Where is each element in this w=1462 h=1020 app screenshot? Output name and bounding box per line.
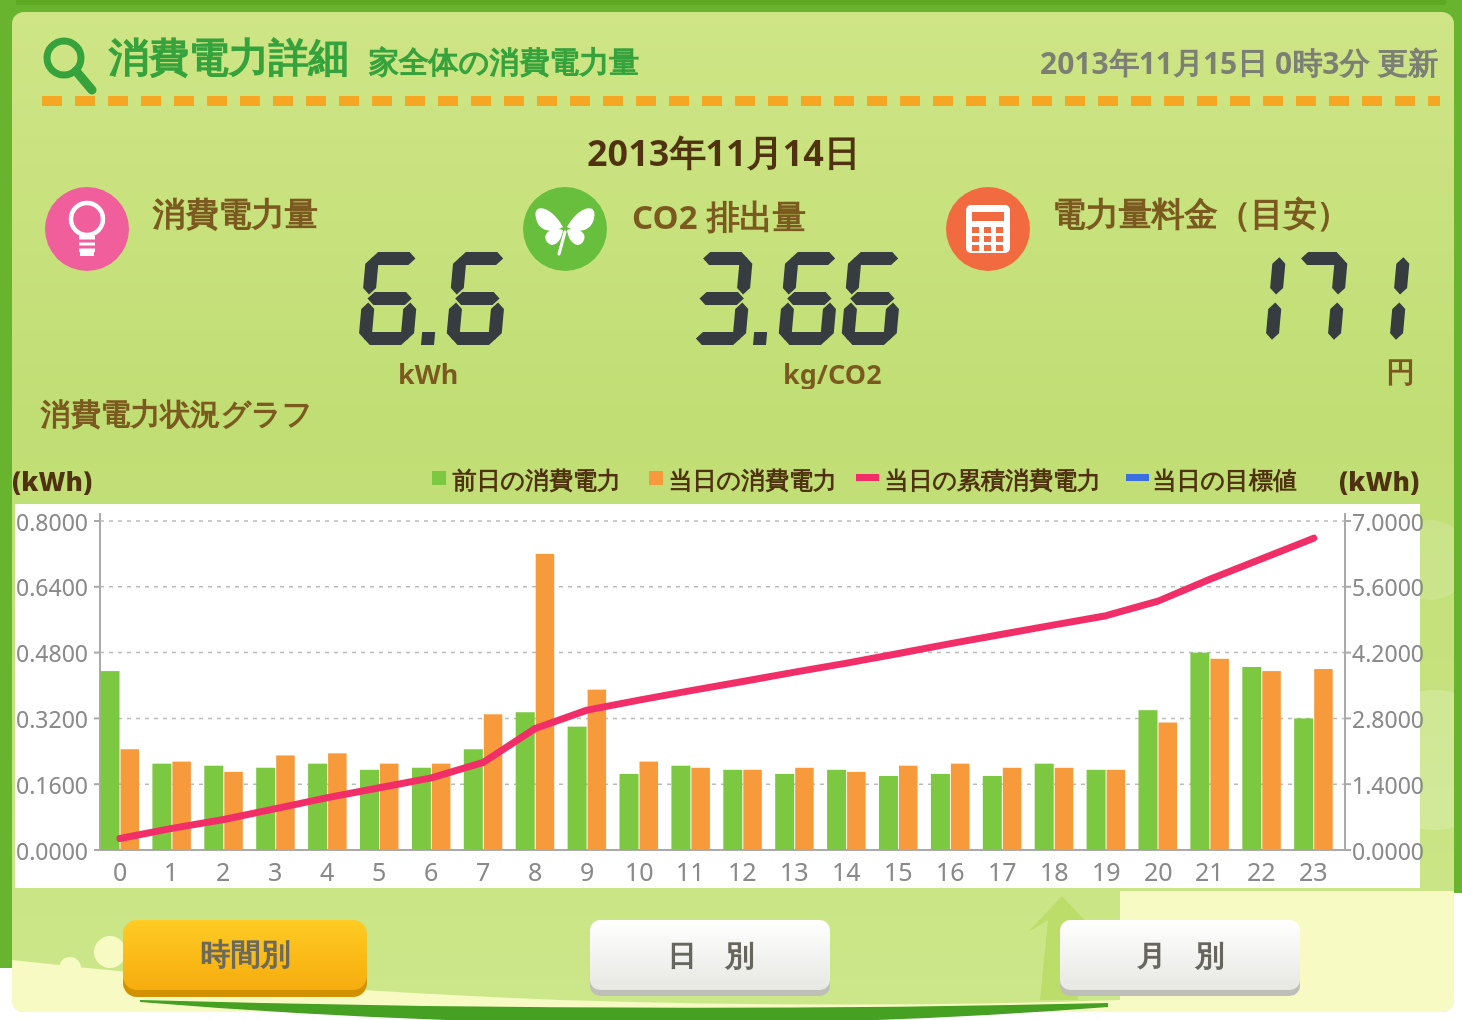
staticText: 6 bbox=[424, 854, 439, 882]
staticText: 10 bbox=[625, 854, 654, 882]
staticText: (kWh) bbox=[12, 463, 93, 498]
staticText: 7.0000 bbox=[1352, 506, 1424, 536]
staticText: 19 bbox=[1092, 854, 1121, 882]
staticText: 0 bbox=[113, 854, 128, 882]
button[interactable]: 時間別 bbox=[123, 920, 367, 990]
staticText: kWh bbox=[398, 355, 459, 389]
staticText: 0.0000 bbox=[1352, 835, 1424, 865]
staticText: 21 bbox=[1195, 854, 1224, 882]
staticText: 0.4800 bbox=[16, 637, 88, 667]
staticText: 14 bbox=[832, 854, 861, 882]
staticText: 5.6000 bbox=[1352, 571, 1424, 601]
staticText: 消費電力状況グラフ bbox=[40, 396, 313, 434]
staticText: 16 bbox=[936, 854, 965, 882]
staticText: 12 bbox=[728, 854, 757, 882]
staticText: 2013年11月14日 bbox=[587, 128, 860, 172]
staticText: 当日の消費電力 bbox=[668, 466, 837, 496]
staticText: 0.8000 bbox=[16, 506, 88, 536]
staticText: 0.6400 bbox=[16, 571, 88, 601]
staticText: 0.3200 bbox=[16, 703, 88, 733]
staticText: 23 bbox=[1299, 854, 1328, 882]
staticText: kg/CO2 bbox=[783, 355, 882, 389]
staticText: 20 bbox=[1144, 854, 1173, 882]
button[interactable]: 日 別 bbox=[590, 920, 830, 990]
staticText: 7 bbox=[476, 854, 491, 882]
staticText: 月 別 bbox=[1137, 935, 1224, 975]
staticText: 18 bbox=[1040, 854, 1069, 882]
staticText: 0.1600 bbox=[16, 769, 88, 799]
staticText: 日 別 bbox=[667, 935, 754, 975]
staticText: 9 bbox=[580, 854, 595, 882]
staticText: CO2 排出量 bbox=[632, 194, 806, 239]
staticText: 消費電力詳細 bbox=[108, 33, 348, 83]
staticText: 2013年11月15日 0時3分 更新 bbox=[1040, 42, 1438, 82]
staticText: 11 bbox=[676, 854, 705, 882]
staticText: 0.0000 bbox=[16, 835, 88, 865]
staticText: 4.2000 bbox=[1352, 637, 1424, 667]
staticText: 2.8000 bbox=[1352, 703, 1424, 733]
staticText: 4 bbox=[320, 854, 335, 882]
staticText: 2 bbox=[216, 854, 231, 882]
staticText: 15 bbox=[884, 854, 913, 882]
staticText: 円 bbox=[1386, 355, 1414, 389]
staticText: 5 bbox=[372, 854, 387, 882]
staticText: 17 bbox=[988, 854, 1017, 882]
button[interactable]: 月 別 bbox=[1060, 920, 1300, 990]
staticText: 前日の消費電力 bbox=[452, 466, 621, 496]
staticText: 消費電力量 bbox=[152, 194, 317, 236]
staticText: 当日の目標値 bbox=[1152, 466, 1297, 496]
staticText: 家全体の消費電力量 bbox=[368, 44, 639, 82]
staticText: 22 bbox=[1247, 854, 1276, 882]
staticText: 当日の累積消費電力 bbox=[884, 466, 1101, 496]
staticText: 1 bbox=[164, 854, 179, 882]
staticText: 1.4000 bbox=[1352, 769, 1424, 799]
staticText: 電力量料金（目安） bbox=[1052, 194, 1349, 236]
staticText: 時間別 bbox=[200, 936, 290, 974]
staticText: 13 bbox=[780, 854, 809, 882]
staticText: (kWh) bbox=[1339, 463, 1420, 495]
staticText: 8 bbox=[528, 854, 543, 882]
staticText: 3 bbox=[268, 854, 283, 882]
